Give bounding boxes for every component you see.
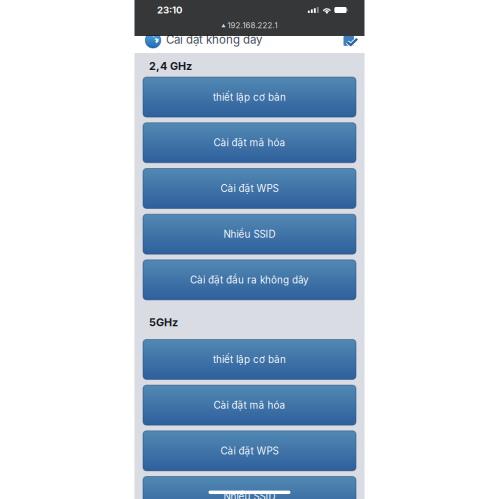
staticText: 192.168.222.1 <box>228 21 278 30</box>
button[interactable]: Cài đặt WPS <box>143 168 356 208</box>
staticText: Cài đặt WPS <box>220 445 278 457</box>
button[interactable]: thiết lập cơ bản <box>143 77 356 117</box>
button[interactable]: Apply wireless settings <box>343 36 358 47</box>
staticText: Cài đặt đầu ra không dây <box>190 274 309 286</box>
button[interactable]: Nhiều SSID <box>143 214 356 254</box>
button[interactable]: Nhiều SSID <box>143 476 356 499</box>
staticText: Nhiều SSID <box>223 491 275 499</box>
button[interactable]: thiết lập cơ bản <box>143 339 356 379</box>
staticText: Cài đặt WPS <box>220 182 278 194</box>
staticText: 5GHz <box>149 316 178 329</box>
staticText: thiết lập cơ bản <box>213 353 286 365</box>
staticText: Cài đặt mã hóa <box>213 137 285 149</box>
staticText: thiết lập cơ bản <box>213 91 286 103</box>
button[interactable]: Cài đặt mã hóa <box>143 123 356 163</box>
button[interactable]: Cài đặt WPS <box>143 431 356 471</box>
button[interactable]: Cài đặt đầu ra không dây <box>143 260 356 300</box>
button[interactable]: Cài đặt mã hóa <box>143 385 356 425</box>
staticText: Cài đặt mã hóa <box>213 399 285 411</box>
staticText: 23:10 <box>157 4 182 16</box>
staticText: 2,4 GHz <box>149 59 192 73</box>
staticText: Cài đặt không dây <box>166 33 262 46</box>
staticText: Nhiều SSID <box>223 228 275 240</box>
